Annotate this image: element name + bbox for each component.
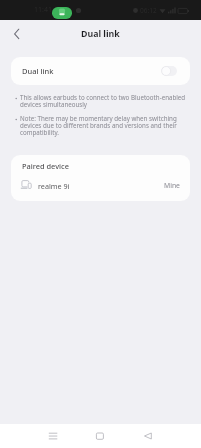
button[interactable]: Dual link switch bbox=[161, 66, 177, 76]
button[interactable]: Home bbox=[76, 424, 124, 448]
button[interactable]: Recent apps bbox=[29, 424, 76, 448]
staticText: Paired device bbox=[22, 161, 69, 171]
button[interactable]: realme 9i bbox=[11, 176, 190, 195]
staticText: 06:12 bbox=[140, 6, 157, 15]
staticText: Mine bbox=[164, 181, 180, 190]
staticText: Dual link bbox=[81, 28, 120, 40]
staticText: realme 9i bbox=[38, 181, 70, 191]
button[interactable]: Back bbox=[6, 25, 27, 46]
staticText: Dual link bbox=[22, 66, 54, 76]
staticText: This allows earbuds to connect to two Bl… bbox=[20, 93, 188, 109]
staticText: Note: There may be momentary delay when … bbox=[20, 114, 188, 137]
button[interactable]: Back bbox=[124, 424, 172, 448]
button[interactable]: Dual link bbox=[11, 57, 190, 85]
